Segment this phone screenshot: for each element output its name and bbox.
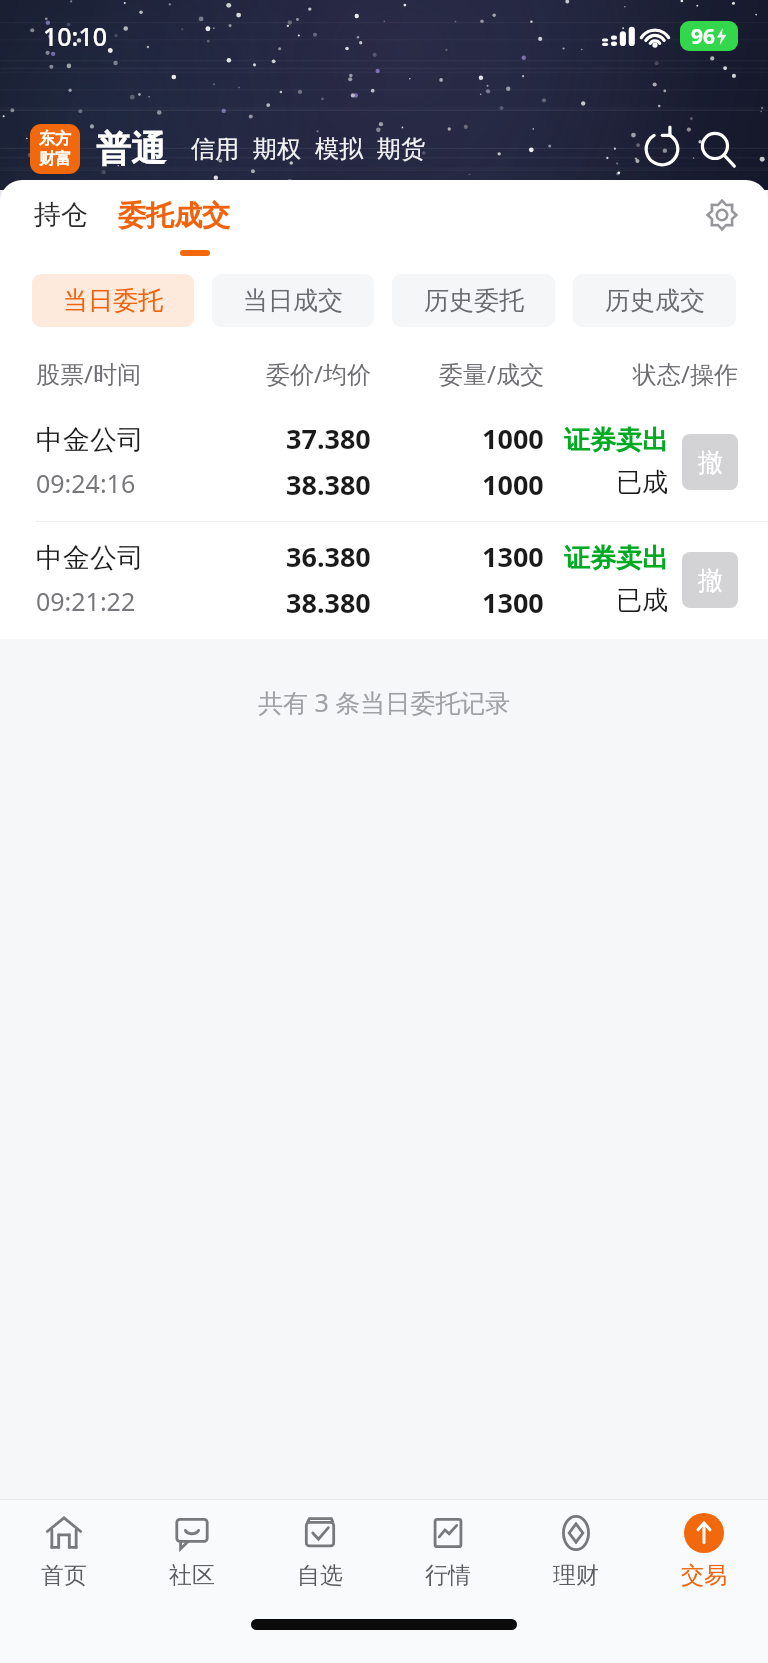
staticText: 中金公司: [36, 423, 144, 457]
staticText: 东方: [39, 129, 71, 149]
staticText: 中金公司: [36, 541, 144, 575]
staticText: 交易: [681, 1561, 727, 1590]
staticText: 股票/时间: [36, 357, 208, 390]
staticText: 历史委托: [424, 285, 524, 316]
staticText: 38.380: [286, 584, 371, 621]
button[interactable]: 历史委托: [392, 274, 555, 327]
staticText: 当日成交: [243, 285, 343, 316]
staticText: 已成: [616, 466, 668, 499]
staticText: 09:21:22: [36, 584, 136, 618]
staticText: 09:24:16: [36, 466, 136, 500]
staticText: 1300: [482, 584, 544, 621]
staticText: 1300: [482, 538, 544, 575]
staticText: 委托成交: [118, 198, 230, 233]
button[interactable]: 东方: [30, 124, 80, 174]
staticText: 自选: [297, 1561, 343, 1590]
button[interactable]: 社区: [128, 1500, 256, 1601]
button[interactable]: 委托成交: [110, 198, 238, 233]
staticText: 历史成交: [605, 285, 705, 316]
button[interactable]: Settings: [698, 191, 746, 239]
button[interactable]: 中金公司: [0, 522, 768, 639]
button[interactable]: 历史成交: [573, 274, 736, 327]
button[interactable]: 交易: [640, 1500, 768, 1601]
button[interactable]: 期权: [246, 134, 308, 164]
button[interactable]: 模拟: [308, 134, 370, 164]
staticText: 委量/成交: [381, 357, 544, 390]
button[interactable]: 当日成交: [212, 274, 374, 327]
button[interactable]: 首页: [0, 1500, 128, 1601]
staticText: 36.380: [286, 538, 371, 575]
staticText: 财富: [39, 149, 71, 169]
button[interactable]: 中金公司: [0, 404, 768, 521]
staticText: 期货: [377, 134, 425, 164]
staticText: 38.380: [286, 466, 371, 503]
staticText: 社区: [169, 1561, 215, 1590]
staticText: 1000: [482, 420, 544, 457]
staticText: 37.380: [286, 420, 371, 457]
button[interactable]: 理财: [512, 1500, 640, 1601]
staticText: 期权: [253, 134, 301, 164]
staticText: 已成: [616, 584, 668, 617]
button[interactable]: 信用: [184, 134, 246, 164]
staticText: 状态/操作: [550, 357, 738, 390]
button[interactable]: 当日委托: [32, 274, 194, 327]
staticText: 证券卖出: [564, 424, 668, 457]
staticText: 撤: [698, 565, 723, 596]
staticText: 证券卖出: [564, 542, 668, 575]
staticText: 模拟: [315, 134, 363, 164]
staticText: 96: [691, 22, 716, 51]
staticText: 首页: [41, 1561, 87, 1590]
button[interactable]: 自选: [256, 1500, 384, 1601]
staticText: 持仓: [34, 198, 88, 232]
button[interactable]: 普通: [94, 127, 168, 171]
staticText: 理财: [553, 1561, 599, 1590]
button[interactable]: 期货: [370, 134, 432, 164]
button[interactable]: 持仓: [26, 190, 96, 240]
staticText: 10:10: [43, 19, 108, 53]
button[interactable]: 行情: [384, 1500, 512, 1601]
button[interactable]: 撤: [682, 552, 738, 608]
staticText: 1000: [482, 466, 544, 503]
staticText: 委价/均价: [208, 357, 371, 390]
staticText: 撤: [698, 447, 723, 478]
staticText: 行情: [425, 1561, 471, 1590]
staticText: 共有 3 条当日委托记录: [258, 685, 511, 719]
staticText: 信用: [191, 134, 239, 164]
staticText: 普通: [96, 127, 166, 171]
button[interactable]: 撤: [682, 434, 738, 490]
button[interactable]: Refresh: [638, 125, 686, 173]
button[interactable]: Search: [694, 125, 742, 173]
staticText: 当日委托: [63, 285, 163, 316]
